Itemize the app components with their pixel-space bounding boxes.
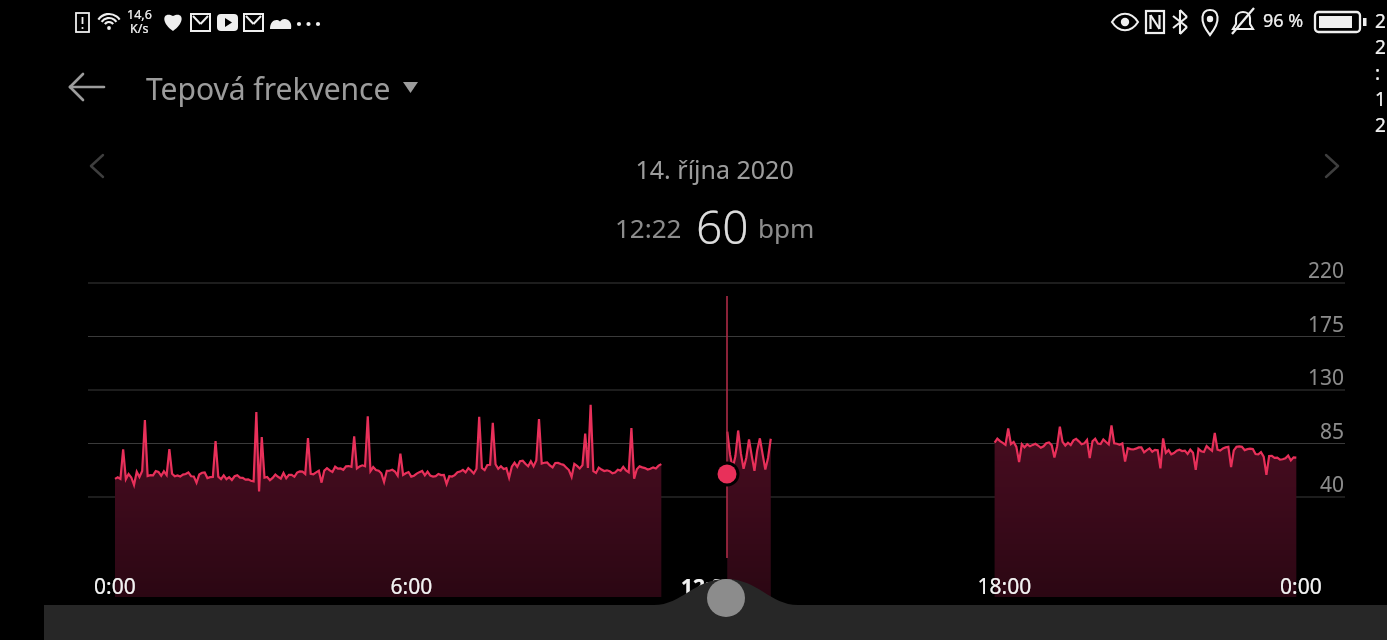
button[interactable]: Time scrubber <box>686 558 766 638</box>
button[interactable]: Previous day <box>73 142 123 192</box>
button[interactable]: Next day <box>1308 142 1358 192</box>
button[interactable] <box>138 62 438 114</box>
button[interactable]: Back <box>62 63 112 113</box>
